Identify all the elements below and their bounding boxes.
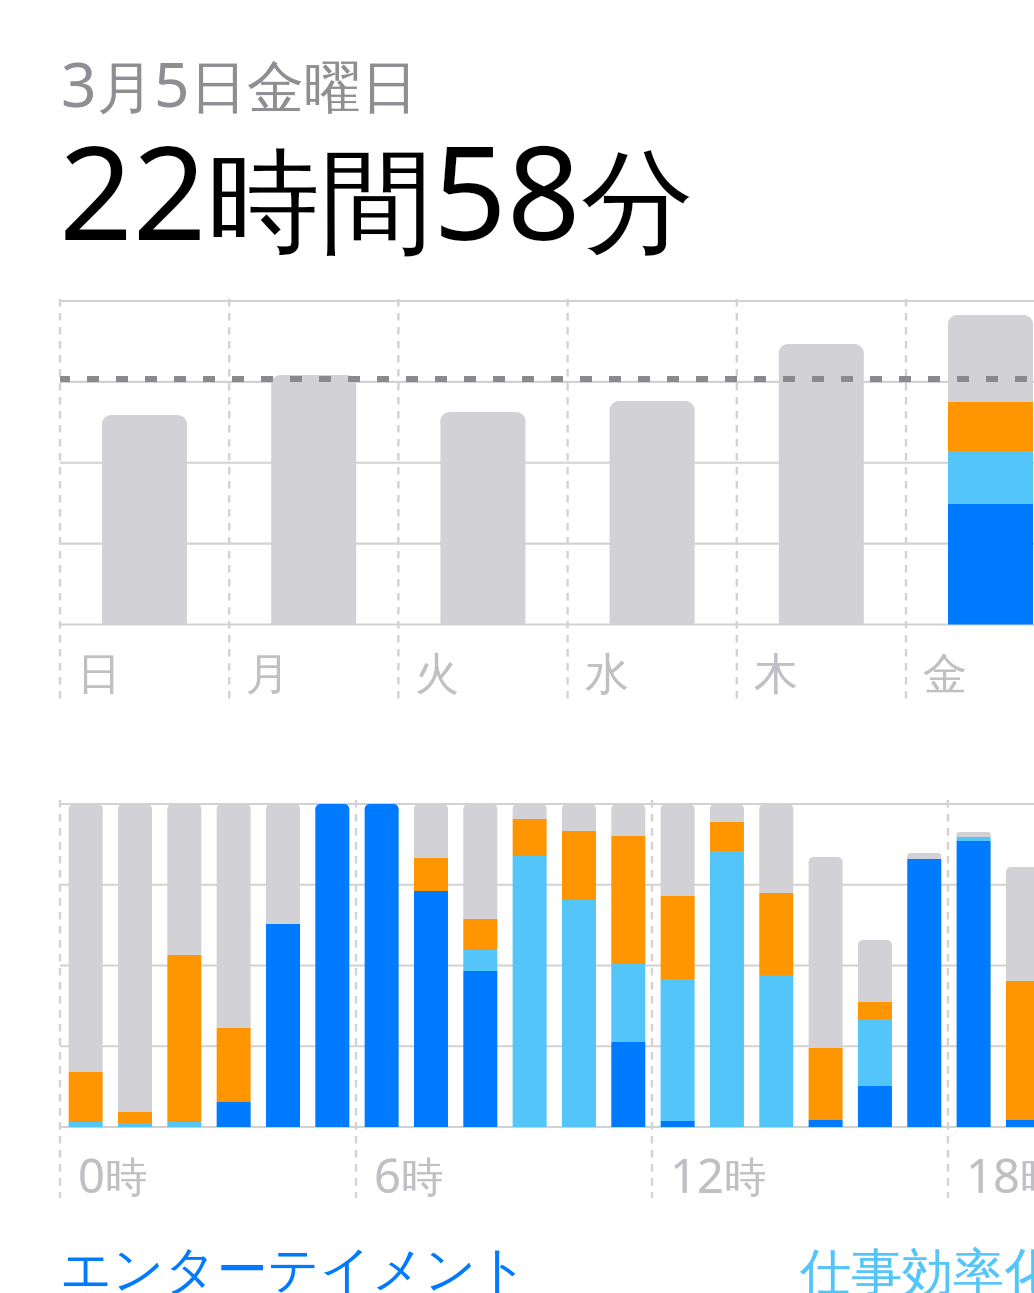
staticText: 木 bbox=[754, 647, 798, 702]
staticText: 18 bbox=[966, 1143, 1020, 1207]
staticText: 時 bbox=[401, 1152, 443, 1205]
staticText: 水 bbox=[585, 647, 629, 702]
staticText: 6 bbox=[374, 1143, 401, 1207]
staticText: 時 bbox=[105, 1152, 147, 1205]
staticText: 時間 bbox=[207, 132, 433, 274]
staticText: 22 bbox=[59, 102, 207, 278]
staticText: 月 bbox=[246, 647, 290, 702]
staticText: 時 bbox=[724, 1152, 766, 1205]
staticText: 火 bbox=[415, 647, 459, 702]
staticText: 金 bbox=[923, 647, 967, 702]
staticText: 日金曜日 bbox=[190, 52, 418, 124]
button[interactable]: エンターテイメント bbox=[60, 1238, 529, 1293]
staticText: 12 bbox=[670, 1143, 724, 1207]
staticText: 時 bbox=[1020, 1152, 1034, 1205]
staticText: 月 bbox=[97, 52, 154, 124]
staticText: 58 bbox=[433, 102, 581, 278]
staticText: 0 bbox=[78, 1143, 105, 1207]
staticText: 分 bbox=[581, 132, 694, 274]
button[interactable]: 仕事効率化 bbox=[800, 1241, 1034, 1293]
staticText: 日 bbox=[77, 647, 121, 702]
staticText: 3 bbox=[61, 41, 97, 125]
staticText: 5 bbox=[154, 41, 190, 125]
